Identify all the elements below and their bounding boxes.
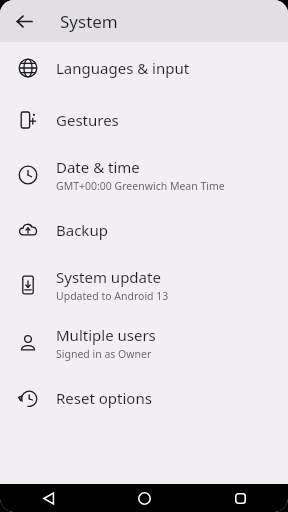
button[interactable]: Multiple users — [0, 314, 288, 372]
button[interactable]: Backup — [0, 204, 288, 256]
staticText: GMT+00:00 Greenwich Mean Time — [56, 179, 225, 193]
button[interactable]: Back — [0, 484, 96, 512]
staticText: Multiple users — [56, 325, 156, 345]
staticText: Gestures — [56, 110, 119, 130]
staticText: Updated to Android 13 — [56, 289, 169, 303]
button[interactable]: Home — [96, 484, 192, 512]
button[interactable]: System update — [0, 256, 288, 314]
staticText: System update — [56, 267, 161, 287]
button[interactable]: Gestures — [0, 94, 288, 146]
staticText: Date & time — [56, 157, 140, 177]
staticText: Signed in as Owner — [56, 347, 152, 361]
button[interactable]: Recent apps — [192, 484, 288, 512]
button[interactable]: Languages & input — [0, 42, 288, 94]
staticText: Languages & input — [56, 58, 190, 78]
button[interactable]: Date & time — [0, 146, 288, 204]
button[interactable]: Back — [8, 5, 40, 37]
staticText: System — [60, 10, 118, 33]
staticText: Backup — [56, 220, 108, 240]
button[interactable]: Reset options — [0, 372, 288, 424]
staticText: Reset options — [56, 388, 152, 408]
